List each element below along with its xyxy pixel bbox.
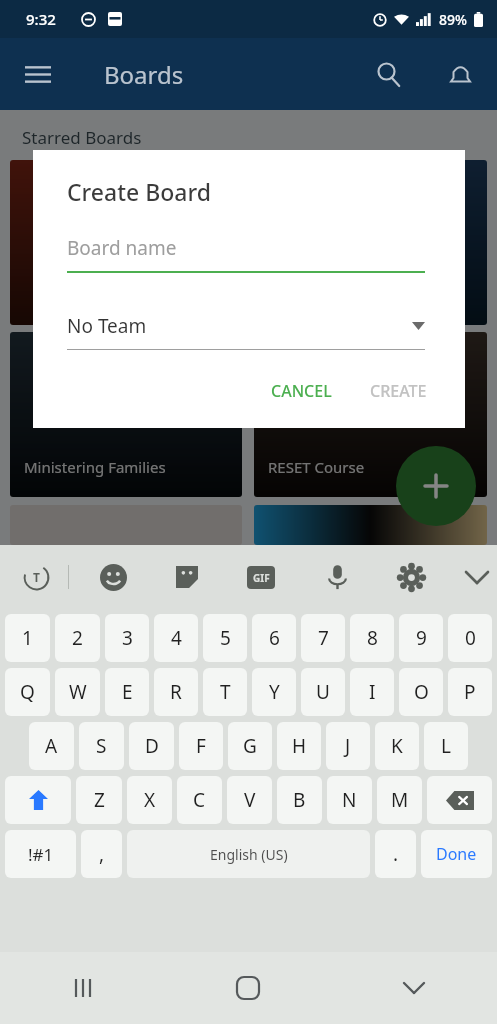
staticText: 3 — [122, 625, 133, 651]
button[interactable]: Emoji — [91, 555, 135, 599]
staticText: W — [69, 679, 87, 705]
staticText: C — [193, 787, 206, 813]
button[interactable]: Open navigation drawer — [14, 50, 62, 98]
button[interactable]: Keyboard settings — [389, 555, 433, 599]
staticText: English (US) — [210, 845, 288, 864]
staticText: K — [391, 733, 403, 759]
staticText: Ministering Families — [24, 457, 166, 477]
button[interactable]: Ministering Families — [10, 332, 242, 497]
staticText: Q — [20, 679, 35, 705]
button[interactable]: S — [79, 722, 124, 770]
button[interactable]: Recents — [0, 952, 165, 1024]
staticText: Z — [94, 787, 105, 813]
staticText: R — [170, 679, 182, 705]
staticText: V — [244, 787, 256, 813]
staticText: X — [144, 787, 156, 813]
button[interactable]: G — [228, 722, 272, 770]
button[interactable]: U — [301, 668, 345, 716]
button[interactable]: 2 — [55, 614, 100, 662]
button[interactable]: E — [105, 668, 149, 716]
button[interactable]: 3 — [105, 614, 149, 662]
button[interactable]: 5 — [203, 614, 247, 662]
button[interactable]: 1 — [5, 614, 50, 662]
button[interactable]: Create board — [396, 446, 476, 526]
staticText: M — [391, 787, 409, 813]
button[interactable]: 9 — [399, 614, 443, 662]
staticText: 89% — [439, 10, 467, 29]
button[interactable]: V — [227, 776, 272, 824]
button[interactable]: , — [81, 830, 122, 878]
button[interactable]: H — [277, 722, 321, 770]
button[interactable]: O — [399, 668, 443, 716]
staticText: No Team — [67, 313, 147, 339]
button[interactable]: 4 — [154, 614, 198, 662]
button[interactable]: K — [375, 722, 419, 770]
button[interactable]: I — [350, 668, 394, 716]
button[interactable]: Translate — [14, 555, 58, 599]
button[interactable]: RESET Course — [254, 332, 487, 497]
button[interactable]: No Team — [67, 313, 425, 350]
staticText: 9 — [416, 625, 427, 651]
button[interactable]: A — [29, 722, 74, 770]
staticText: Boards — [104, 58, 184, 91]
staticText: S — [96, 733, 107, 759]
staticText: N — [342, 787, 357, 813]
staticText: , — [99, 841, 105, 867]
button[interactable]: Notifications — [435, 49, 485, 99]
button[interactable]: 6 — [252, 614, 296, 662]
button[interactable]: Stickers — [165, 555, 209, 599]
staticText: T — [220, 679, 231, 705]
button[interactable]: 8 — [350, 614, 394, 662]
button[interactable]: Voice input — [315, 555, 359, 599]
button[interactable]: B — [277, 776, 322, 824]
button[interactable]: N — [327, 776, 372, 824]
button[interactable]: Z — [76, 776, 122, 824]
button[interactable]: 7 — [301, 614, 345, 662]
button[interactable]: Back — [331, 952, 497, 1024]
button[interactable] — [10, 160, 242, 325]
button[interactable]: CREATE — [358, 372, 439, 410]
button[interactable]: !#1 — [5, 830, 76, 878]
staticText: Board name — [67, 235, 177, 261]
button[interactable]: 0 — [448, 614, 492, 662]
staticText: B — [293, 787, 306, 813]
button[interactable]: Backspace — [427, 776, 492, 824]
button[interactable]: R — [154, 668, 198, 716]
button[interactable]: C — [177, 776, 222, 824]
staticText: 4 — [171, 625, 182, 651]
staticText: 2 — [72, 625, 83, 651]
button[interactable]: X — [127, 776, 172, 824]
staticText: E — [122, 679, 133, 705]
button[interactable]: L — [424, 722, 468, 770]
button[interactable]: CANCEL — [259, 372, 344, 410]
button[interactable] — [254, 160, 487, 325]
button[interactable]: Done — [421, 830, 492, 878]
staticText: I — [369, 679, 376, 705]
button[interactable]: F — [179, 722, 223, 770]
button[interactable]: Hide keyboard — [457, 555, 497, 599]
staticText: !#1 — [28, 843, 54, 866]
button[interactable]: P — [448, 668, 492, 716]
button[interactable]: Q — [5, 668, 50, 716]
button[interactable]: J — [326, 722, 370, 770]
button[interactable]: Home — [165, 952, 331, 1024]
staticText: 8 — [367, 625, 378, 651]
button[interactable]: Y — [252, 668, 296, 716]
button[interactable]: . — [375, 830, 416, 878]
button[interactable]: D — [129, 722, 174, 770]
staticText: G — [243, 733, 257, 759]
button[interactable]: Search — [363, 49, 413, 99]
button[interactable]: Shift — [5, 776, 71, 824]
staticText: 7 — [318, 625, 329, 651]
staticText: O — [414, 679, 429, 705]
staticText: J — [345, 733, 351, 759]
staticText: D — [145, 733, 159, 759]
staticText: F — [196, 733, 206, 759]
button[interactable]: Board name — [67, 235, 425, 273]
button[interactable]: W — [55, 668, 100, 716]
button[interactable]: Space — [127, 830, 370, 878]
staticText: U — [316, 679, 330, 705]
button[interactable]: GIF — [239, 555, 283, 599]
button[interactable]: M — [377, 776, 422, 824]
button[interactable]: T — [203, 668, 247, 716]
